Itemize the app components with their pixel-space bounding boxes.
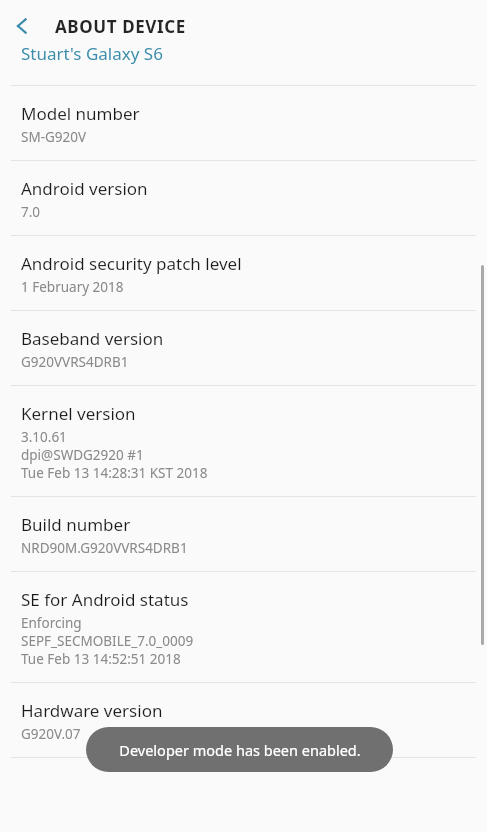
staticText: G920VVRS4DRB1 [21, 353, 129, 371]
staticText: Kernel version [21, 402, 136, 425]
staticText: Tue Feb 13 14:28:31 KST 2018 [21, 464, 208, 482]
staticText: SE for Android status [21, 588, 189, 611]
staticText: 7.0 [21, 203, 41, 221]
staticText: G920V.07 [21, 725, 81, 743]
button[interactable]: Baseband version [0, 311, 487, 386]
staticText: Baseband version [21, 327, 164, 350]
button[interactable]: Android version [0, 161, 487, 236]
staticText: 3.10.61 [21, 428, 67, 446]
button[interactable]: Build number [0, 497, 487, 572]
staticText: 1 February 2018 [21, 278, 124, 296]
staticText: SM-G920V [21, 128, 87, 146]
staticText: Stuart's Galaxy S6 [21, 42, 163, 65]
staticText: Android version [21, 177, 148, 200]
staticText: NRD90M.G920VVRS4DRB1 [21, 539, 188, 557]
staticText: Android security patch level [21, 252, 242, 275]
button[interactable]: Kernel version [0, 386, 487, 497]
button[interactable]: Stuart's Galaxy S6 [0, 51, 487, 85]
staticText: SEPF_SECMOBILE_7.0_0009 [21, 632, 194, 650]
staticText: Model number [21, 102, 140, 125]
staticText: Build number [21, 513, 131, 536]
button[interactable]: Hardware version [0, 683, 487, 758]
staticText: Developer mode has been enabled. [119, 740, 361, 760]
button[interactable]: Model number [0, 86, 487, 161]
button[interactable]: SE for Android status [0, 572, 487, 683]
staticText: ABOUT DEVICE [55, 15, 186, 38]
staticText: Enforcing [21, 614, 82, 632]
staticText: Tue Feb 13 14:52:51 2018 [21, 650, 181, 668]
button[interactable]: Android security patch level [0, 236, 487, 311]
staticText: dpi@SWDG2920 #1 [21, 446, 144, 464]
staticText: Hardware version [21, 699, 163, 722]
button[interactable]: Back [0, 4, 44, 48]
